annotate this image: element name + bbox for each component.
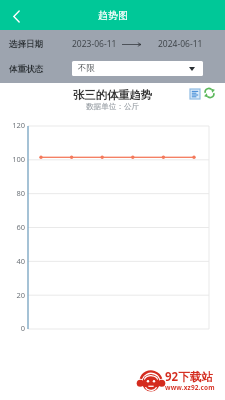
button[interactable]: Refresh: [203, 87, 215, 99]
staticText: 2024-06-11: [158, 38, 203, 50]
button[interactable]: 不限: [72, 61, 203, 76]
staticText: 92下载站: [165, 369, 213, 385]
staticText: 选择日期: [9, 39, 43, 50]
staticText: 2023-06-11: [72, 38, 117, 50]
staticText: 0: [0, 323, 25, 333]
staticText: 体重状态: [9, 64, 43, 75]
staticText: 趋势图: [98, 9, 128, 22]
staticText: 不限: [78, 63, 95, 74]
staticText: 20: [0, 290, 25, 300]
staticText: 60: [0, 222, 25, 232]
staticText: 100: [0, 154, 25, 164]
staticText: 40: [0, 256, 25, 266]
staticText: www.xz92.com: [165, 383, 215, 392]
staticText: 数据单位：公斤: [86, 102, 140, 112]
button[interactable]: Back: [5, 5, 27, 27]
button[interactable]: Data table: [189, 88, 200, 99]
staticText: 120: [0, 120, 25, 130]
staticText: 80: [0, 188, 25, 198]
staticText: 张三的体重趋势: [73, 88, 153, 102]
